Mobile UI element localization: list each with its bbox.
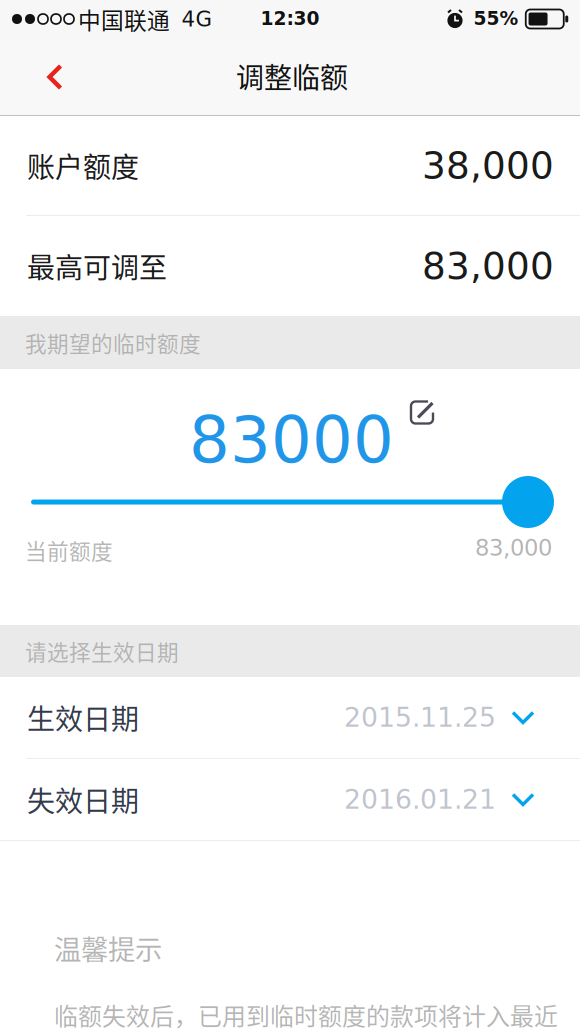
staticText: 55% bbox=[473, 8, 518, 29]
staticText: 临额失效后，已用到临时额度的款项将计入最近 bbox=[54, 998, 558, 1030]
staticText: 调整临额 bbox=[236, 56, 348, 96]
staticText: 账户额度 bbox=[27, 145, 139, 186]
staticText: 生效日期 bbox=[27, 697, 139, 738]
staticText: 温馨提示 bbox=[54, 928, 162, 968]
staticText: 83,000 bbox=[422, 244, 554, 288]
staticText: 请选择生效日期 bbox=[25, 635, 179, 667]
button[interactable]: 生效日期 bbox=[0, 677, 580, 758]
button[interactable]: 失效日期 bbox=[0, 759, 580, 840]
staticText: 38,000 bbox=[422, 144, 554, 187]
button[interactable]: Edit amount bbox=[400, 390, 444, 434]
staticText: 83000 bbox=[189, 403, 394, 477]
staticText: 我期望的临时额度 bbox=[25, 327, 201, 358]
staticText: 中国联通 bbox=[78, 3, 170, 35]
staticText: 当前额度 bbox=[25, 534, 113, 566]
staticText: 2015.11.25 bbox=[344, 702, 496, 733]
staticText: 12:30 bbox=[260, 8, 319, 29]
staticText: 失效日期 bbox=[27, 779, 139, 820]
staticText: 4G bbox=[181, 7, 212, 31]
staticText: 83,000 bbox=[475, 535, 552, 561]
staticText: 最高可调至 bbox=[27, 246, 167, 286]
staticText: 2016.01.21 bbox=[344, 784, 496, 815]
button[interactable]: Back bbox=[25, 47, 85, 107]
